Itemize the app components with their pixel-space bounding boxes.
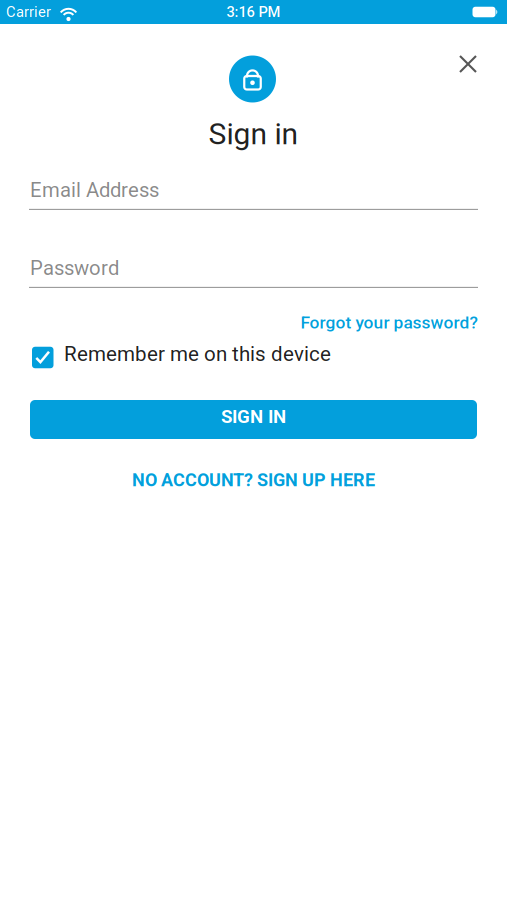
button[interactable]: Forgot your password? [0,312,507,333]
button[interactable]: NO ACCOUNT? SIGN UP HERE [132,469,375,491]
button[interactable]: Password [0,256,507,288]
button[interactable]: Close [458,54,478,74]
staticText: Remember me on this device [64,342,331,366]
staticText: Sign in [208,116,298,152]
button[interactable]: Remember me on this device [0,342,507,366]
button[interactable]: SIGN IN [30,400,477,439]
staticText: Password [30,256,119,280]
staticText: SIGN IN [221,406,286,427]
staticText: 3:16 PM [226,3,280,21]
staticText: Email Address [30,178,159,202]
button[interactable]: Email Address [0,178,507,210]
staticText: NO ACCOUNT? SIGN UP HERE [132,469,375,491]
staticText: Forgot your password? [300,312,477,333]
staticText: Carrier [6,3,51,21]
